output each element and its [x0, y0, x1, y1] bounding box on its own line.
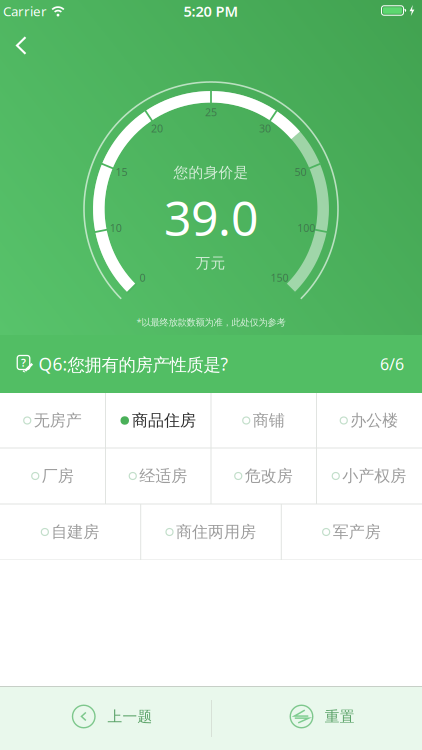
staticText: 商住两用房 [176, 522, 256, 542]
staticText: ? [21, 355, 26, 370]
button[interactable]: 办公楼 [340, 411, 398, 430]
button[interactable]: 自建房 [41, 522, 99, 542]
button[interactable]: 商住两用房 [166, 522, 256, 542]
staticText: 10 [110, 221, 122, 235]
staticText: 自建房 [51, 522, 99, 542]
staticText: 军产房 [333, 522, 381, 542]
button[interactable]: 军产房 [323, 522, 381, 542]
button[interactable]: Back [15, 36, 27, 55]
button[interactable]: 重置 [290, 705, 355, 728]
button[interactable]: 无房产 [24, 411, 82, 430]
button[interactable]: 上一题 [72, 705, 152, 728]
staticText: 0 [139, 270, 145, 285]
staticText: 商品住房 [132, 411, 196, 430]
staticText: 商铺 [253, 411, 285, 430]
staticText: 100 [297, 221, 315, 235]
staticText: 20 [151, 121, 163, 135]
staticText: 危改房 [245, 466, 293, 486]
staticText: 小产权房 [342, 466, 406, 486]
staticText: Q6:您拥有的房产性质是? [38, 352, 228, 375]
button[interactable]: 厂房 [32, 466, 74, 486]
staticText: 经适房 [139, 466, 187, 486]
button[interactable]: 商品住房 [120, 411, 196, 430]
staticText: 15 [115, 165, 127, 179]
staticText: 厂房 [42, 466, 74, 486]
staticText: *以最终放款数额为准，此处仅为参考 [136, 316, 285, 328]
staticText: 6/6 [380, 353, 404, 375]
staticText: 30 [259, 121, 271, 135]
staticText: 无房产 [34, 411, 82, 430]
button[interactable]: 商铺 [243, 411, 285, 430]
staticText: Carrier [3, 2, 47, 20]
button[interactable]: 经适房 [129, 466, 187, 486]
staticText: 您的身价是 [173, 163, 248, 181]
staticText: 25 [205, 105, 217, 119]
staticText: 上一题 [107, 707, 152, 725]
button[interactable]: 危改房 [235, 466, 293, 486]
staticText: 39.0 [164, 186, 258, 249]
staticText: 办公楼 [350, 411, 398, 430]
staticText: 万元 [195, 254, 225, 272]
staticText: 重置 [325, 707, 355, 725]
staticText: 5:20 PM [183, 1, 238, 21]
staticText: 150 [271, 270, 289, 285]
staticText: 50 [295, 165, 307, 179]
button[interactable]: 小产权房 [332, 466, 406, 486]
